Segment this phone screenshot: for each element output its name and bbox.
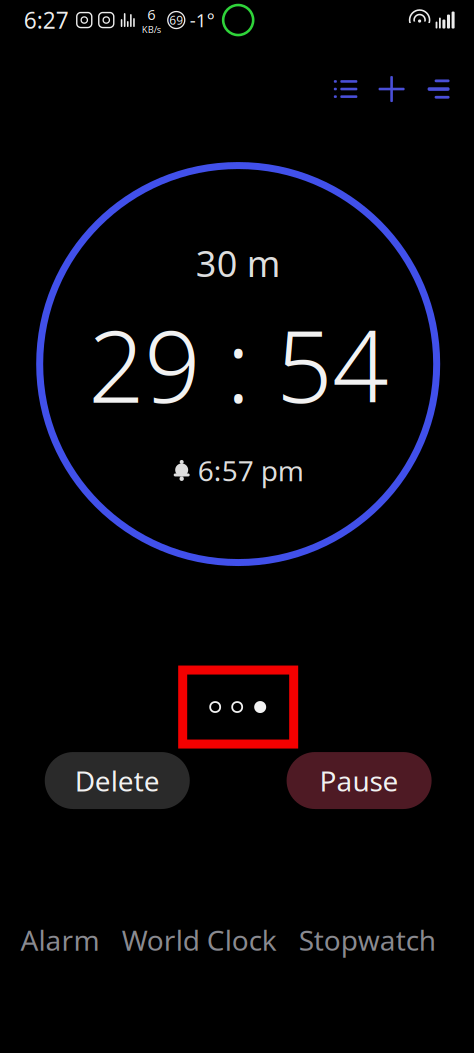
staticText: 6:27 (24, 5, 69, 35)
button[interactable]: Delete (45, 752, 190, 809)
button[interactable]: Pause (287, 752, 432, 809)
button[interactable]: World Clock (116, 913, 283, 967)
button[interactable]: Timer settings (415, 66, 461, 112)
staticText: Alarm (21, 921, 100, 959)
button[interactable]: Alarm (15, 913, 106, 967)
button[interactable]: Stopwatch (293, 913, 442, 967)
staticText: -1° (190, 8, 215, 32)
staticText: 30 m (196, 239, 281, 287)
staticText: Stopwatch (299, 921, 436, 959)
staticText: KB/s (142, 23, 161, 35)
staticText: 6 (147, 5, 155, 24)
staticText: 6:57 pm (198, 452, 304, 489)
button[interactable]: Timer list (323, 66, 369, 112)
button[interactable]: Add timer (369, 66, 415, 112)
staticText: Delete (75, 762, 160, 799)
staticText: 69 (169, 12, 183, 28)
staticText: 29 : 54 (88, 299, 388, 430)
staticText: World Clock (122, 921, 277, 959)
staticText: Pause (320, 762, 399, 799)
